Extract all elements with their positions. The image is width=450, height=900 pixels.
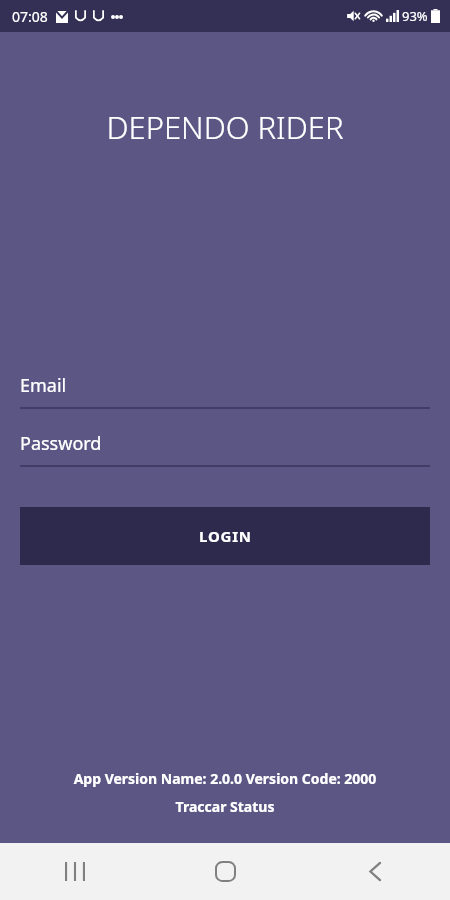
button[interactable]: Password [20, 431, 430, 467]
button[interactable]: Recent apps [0, 843, 150, 900]
staticText: Password [20, 431, 102, 456]
button[interactable]: Traccar Status [0, 797, 450, 816]
staticText: LOGIN [199, 526, 252, 546]
button[interactable]: Home [150, 843, 300, 900]
button[interactable]: Back [300, 843, 450, 900]
staticText: 07:08 [12, 7, 48, 26]
staticText: Email [20, 373, 67, 398]
button[interactable]: LOGIN [20, 507, 430, 565]
staticText: 93% [402, 7, 428, 25]
staticText: App Version Name: 2.0.0 Version Code: 20… [0, 769, 450, 788]
staticText: DEPENDO RIDER [0, 106, 450, 148]
button[interactable]: Email [20, 373, 430, 409]
